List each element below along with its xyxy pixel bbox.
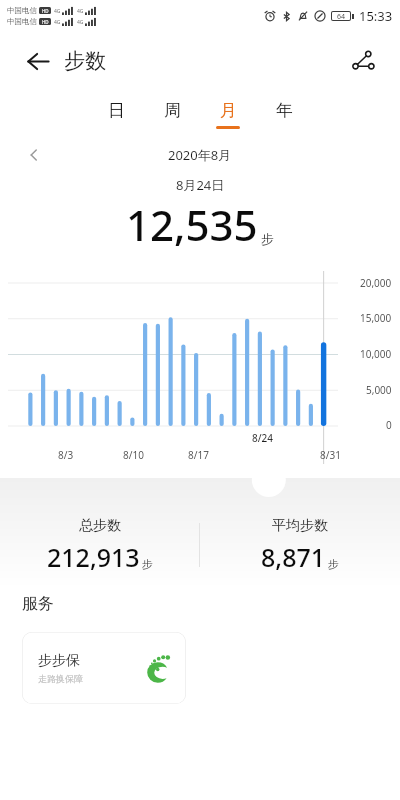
button[interactable]: 平均步数 — [200, 517, 400, 574]
staticText: 中国电信 — [7, 6, 37, 15]
button[interactable]: Share — [342, 40, 384, 82]
staticText: 服务 — [22, 594, 54, 614]
button[interactable]: Previous month — [16, 138, 52, 172]
staticText: 5,000 — [366, 383, 392, 397]
staticText: 8,871 — [261, 540, 326, 574]
staticText: 年 — [276, 100, 293, 121]
staticText: 4G — [54, 8, 61, 15]
staticText: HD — [42, 19, 49, 25]
staticText: 8/17 — [188, 448, 209, 462]
staticText: 步 — [261, 231, 274, 247]
staticText: 4G — [77, 19, 84, 26]
staticText: 中国电信 — [7, 17, 37, 26]
staticText: 月 — [220, 100, 237, 121]
button[interactable]: 总步数 — [0, 517, 199, 574]
staticText: 周 — [164, 100, 181, 121]
button[interactable]: 周 — [144, 90, 200, 138]
staticText: 8/31 — [320, 448, 341, 462]
staticText: 4G — [54, 19, 61, 26]
staticText: 8/3 — [58, 448, 74, 462]
staticText: 步步保 — [38, 652, 80, 670]
staticText: 12,535 — [126, 196, 258, 253]
staticText: 15,000 — [360, 311, 392, 325]
button[interactable]: 步步保 — [22, 632, 186, 704]
staticText: 总步数 — [79, 517, 121, 535]
staticText: 日 — [108, 100, 125, 121]
staticText: 0 — [386, 418, 392, 432]
staticText: 步数 — [64, 48, 106, 74]
staticText: 15:33 — [359, 7, 393, 25]
staticText: 4G — [77, 8, 84, 15]
staticText: 步 — [328, 557, 339, 571]
staticText: 8/24 — [252, 431, 274, 445]
staticText: 2020年8月 — [168, 146, 232, 164]
button[interactable]: 年 — [256, 90, 312, 138]
staticText: 212,913 — [47, 540, 140, 574]
staticText: HD — [42, 8, 49, 14]
staticText: 步 — [142, 557, 153, 571]
button[interactable]: Back — [18, 41, 58, 81]
button[interactable]: 月 — [200, 90, 256, 138]
staticText: 平均步数 — [272, 517, 328, 535]
staticText: 10,000 — [360, 347, 392, 361]
button[interactable]: 日 — [88, 90, 144, 138]
staticText: 20,000 — [360, 276, 392, 290]
staticText: 64 — [337, 12, 346, 20]
staticText: 8/10 — [123, 448, 144, 462]
staticText: 8月24日 — [176, 176, 225, 194]
staticText: 走路换保障 — [38, 673, 83, 684]
